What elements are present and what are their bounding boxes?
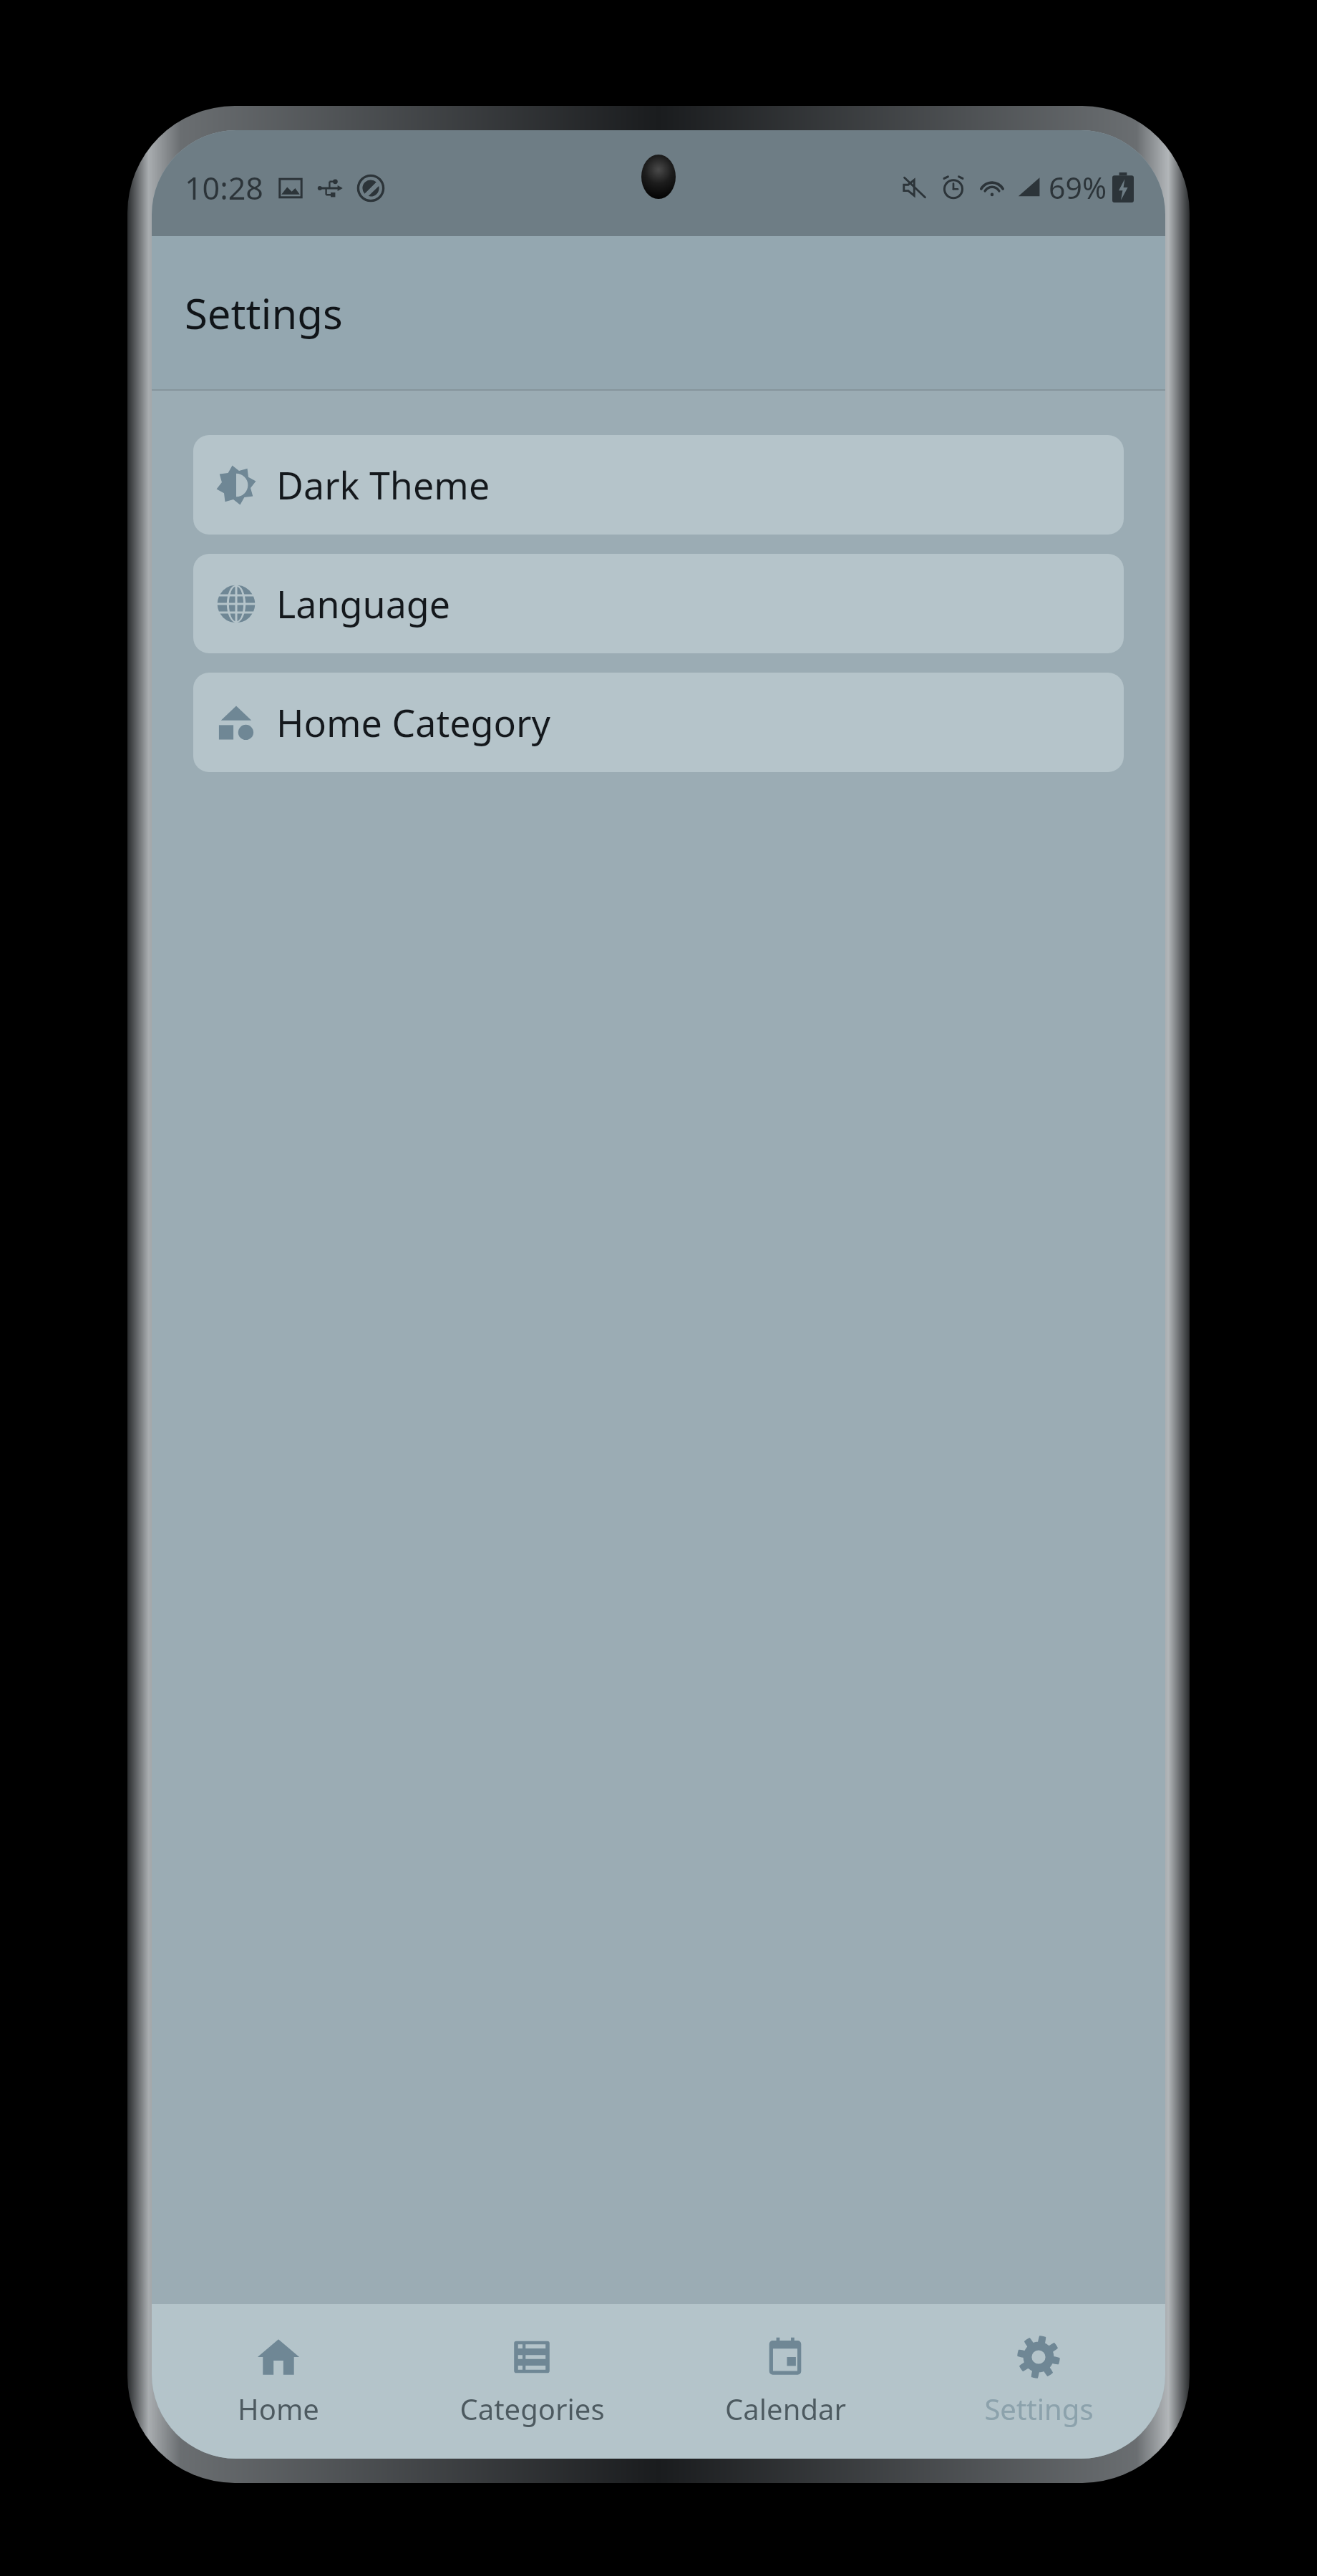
button[interactable]: Home Category [193, 673, 1124, 772]
staticText: 10:28 [185, 167, 263, 209]
staticText: Dark Theme [276, 459, 490, 510]
staticText: Language [276, 578, 451, 629]
staticText: Calendar [725, 2389, 846, 2428]
button[interactable]: Language [193, 554, 1124, 653]
button[interactable]: Home [152, 2304, 405, 2459]
staticText: Home Category [276, 697, 551, 748]
button[interactable]: Calendar [658, 2304, 912, 2459]
staticText: Settings [984, 2389, 1094, 2428]
button[interactable]: Dark Theme [193, 435, 1124, 535]
staticText: 69% [1049, 167, 1107, 208]
button[interactable]: Categories [405, 2304, 658, 2459]
staticText: Settings [185, 285, 343, 341]
staticText: Home [238, 2389, 319, 2428]
button[interactable]: Settings [912, 2304, 1165, 2459]
staticText: Categories [460, 2389, 605, 2428]
